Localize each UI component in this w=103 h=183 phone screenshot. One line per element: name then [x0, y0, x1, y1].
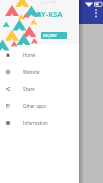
button[interactable]: Information: [0, 114, 79, 131]
staticText: Home: [23, 52, 36, 58]
staticText: ENQUIRY: [43, 34, 57, 38]
staticText: Information: [23, 120, 48, 126]
button[interactable]: Website: [0, 63, 79, 80]
button[interactable]: More options: [91, 7, 101, 21]
staticText: 4:47 PM: [41, 0, 57, 5]
staticText: Other apps: [23, 103, 47, 109]
button[interactable]: Share: [0, 80, 79, 97]
button[interactable]: Home: [0, 46, 79, 63]
staticText: MY-KSA: [34, 9, 63, 19]
button[interactable]: Other apps: [0, 97, 79, 114]
staticText: Website: [23, 69, 40, 75]
staticText: Share: [23, 86, 35, 92]
button[interactable]: ENQUIRY: [41, 32, 67, 39]
